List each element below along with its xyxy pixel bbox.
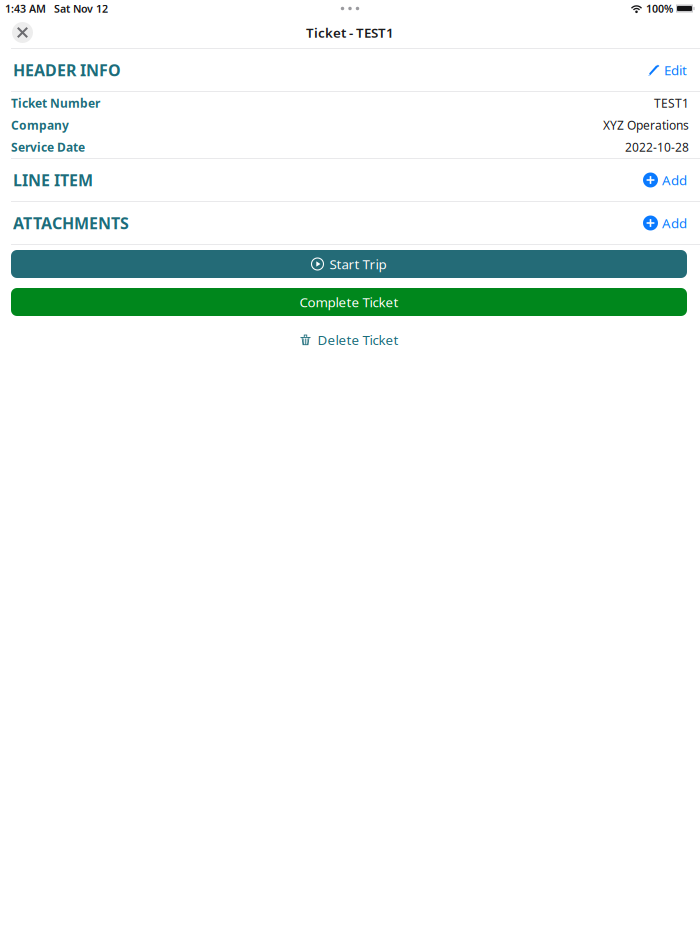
staticText: ATTACHMENTS	[13, 212, 129, 234]
button[interactable]: Add	[641, 208, 689, 238]
staticText: Delete Ticket	[317, 331, 398, 349]
staticText: Company	[11, 117, 69, 133]
staticText: Add	[662, 214, 687, 232]
staticText: LINE ITEM	[13, 169, 93, 191]
staticText: HEADER INFO	[13, 59, 121, 81]
staticText: XYZ Operations	[603, 117, 689, 133]
button[interactable]: Delete Ticket	[299, 325, 398, 355]
staticText: Add	[662, 171, 687, 189]
staticText: 2022-10-28	[625, 139, 689, 155]
staticText: Complete Ticket	[299, 293, 398, 311]
staticText: 100%	[646, 1, 673, 16]
button[interactable]: Complete Ticket	[11, 288, 687, 316]
staticText: Service Date	[11, 139, 85, 155]
staticText: Ticket - TEST1	[306, 24, 394, 41]
button[interactable]: Edit	[646, 55, 689, 85]
staticText: TEST1	[654, 95, 689, 111]
staticText: Edit	[664, 61, 687, 79]
button[interactable]: Add	[641, 165, 689, 195]
staticText: Ticket Number	[11, 95, 100, 111]
staticText: Sat Nov 12	[54, 1, 108, 16]
staticText: Start Trip	[329, 255, 386, 273]
button[interactable]: Start Trip	[11, 250, 687, 278]
staticText: 1:43 AM	[5, 1, 46, 16]
button[interactable]: Close	[7, 17, 38, 48]
